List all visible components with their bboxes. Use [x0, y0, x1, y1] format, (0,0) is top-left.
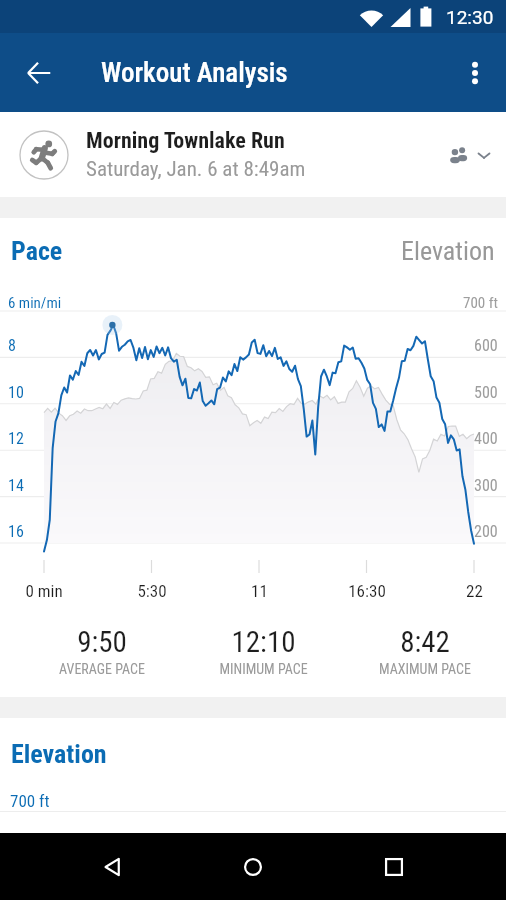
button[interactable]: 9:50	[21, 625, 182, 677]
staticText: 300	[474, 476, 498, 495]
button[interactable]: Home	[225, 839, 281, 895]
staticText: 6 min/mi	[8, 294, 62, 312]
staticText: 16:30	[348, 581, 386, 601]
staticText: 16	[8, 522, 24, 541]
staticText: 700 ft	[10, 791, 50, 811]
button[interactable]: Sharing options	[447, 143, 492, 167]
staticText: 11	[251, 581, 268, 601]
staticText: 400	[474, 429, 498, 448]
staticText: 22	[466, 581, 483, 601]
staticText: Saturday, Jan. 6 at 8:49am	[86, 157, 306, 182]
button[interactable]: Back	[85, 839, 141, 895]
staticText: 500	[474, 383, 498, 402]
button[interactable]: 12:10	[182, 625, 344, 677]
staticText: 8:42	[400, 625, 450, 659]
button[interactable]: Recent apps	[366, 839, 422, 895]
button[interactable]: Pace	[11, 236, 63, 266]
button[interactable]: Morning Townlake Run	[0, 112, 506, 197]
staticText: Workout Analysis	[101, 57, 288, 89]
staticText: 9:50	[77, 625, 127, 659]
button[interactable]: 8:42	[344, 625, 506, 677]
staticText: 10	[8, 383, 24, 402]
button[interactable]: Elevation	[401, 236, 495, 266]
staticText: 8	[8, 336, 16, 355]
staticText: 12	[8, 429, 24, 448]
staticText: MINIMUM PACE	[219, 661, 308, 677]
staticText: 700 ft	[463, 294, 498, 312]
staticText: 5:30	[137, 581, 167, 601]
staticText: 600	[474, 336, 498, 355]
staticText: 12:30	[446, 6, 494, 28]
staticText: 200	[474, 522, 498, 541]
button[interactable]: Back	[15, 49, 63, 97]
staticText: 0 min	[25, 581, 63, 601]
staticText: MAXIMUM PACE	[379, 661, 471, 677]
staticText: Morning Townlake Run	[86, 128, 285, 154]
button[interactable]: Elevation	[11, 739, 107, 769]
staticText: 14	[8, 476, 24, 495]
button[interactable]: More options	[451, 49, 499, 97]
staticText: 12:10	[231, 625, 296, 659]
staticText: AVERAGE PACE	[59, 661, 145, 677]
